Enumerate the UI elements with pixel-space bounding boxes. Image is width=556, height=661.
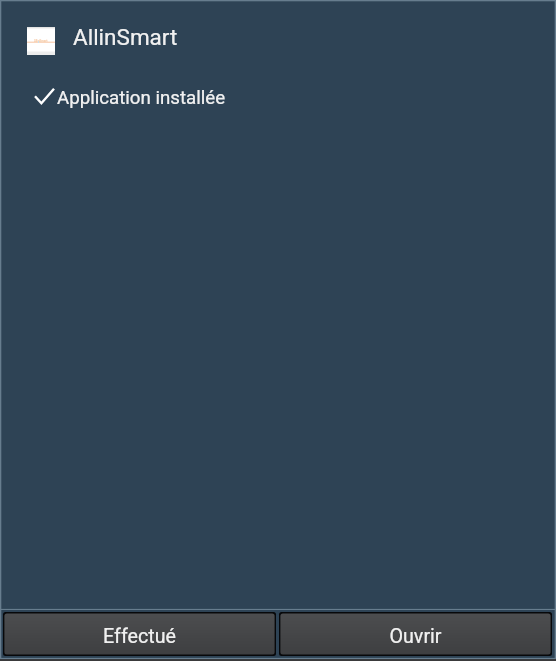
other: AllinSmart app icon [27,27,55,55]
staticText: AllinSmart [34,39,48,42]
staticText: AllinSmart [73,24,178,50]
staticText: Ouvrir [389,625,442,648]
button[interactable]: Effectué [3,612,276,656]
staticText: Effectué [103,625,176,648]
staticText: Application installée [57,87,226,109]
button[interactable]: Ouvrir [279,612,552,656]
